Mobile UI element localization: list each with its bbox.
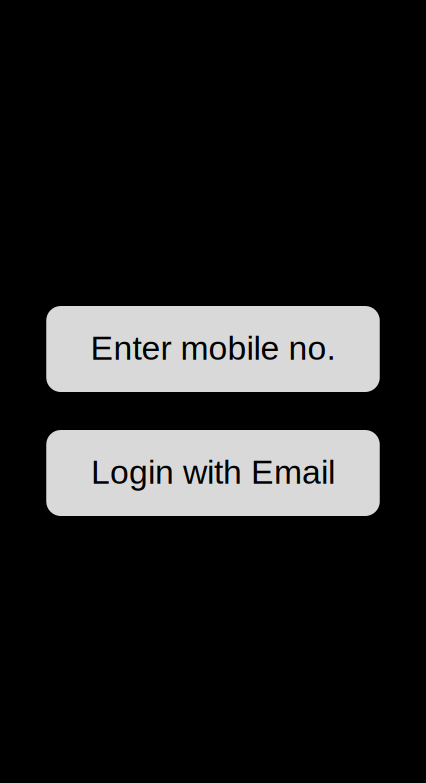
- staticText: Login with Email: [91, 453, 335, 491]
- button[interactable]: Login with Email: [46, 430, 380, 516]
- staticText: Enter mobile no.: [90, 329, 335, 367]
- button[interactable]: Enter mobile no.: [46, 306, 380, 392]
